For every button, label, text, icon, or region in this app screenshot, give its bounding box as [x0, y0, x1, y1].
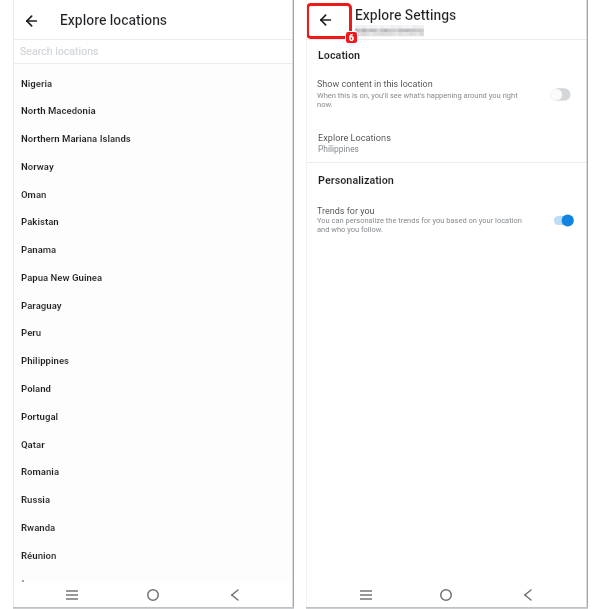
staticText: Portugal: [21, 411, 59, 422]
staticText: Romania: [21, 466, 60, 477]
staticText: Réunion: [21, 550, 57, 561]
staticText: Explore Settings: [355, 7, 457, 23]
staticText: Northern Mariana Islands: [21, 133, 131, 144]
button[interactable]: Recent apps: [355, 584, 377, 606]
button[interactable]: Romania: [13, 457, 294, 485]
button[interactable]: Réunion: [13, 541, 294, 569]
button[interactable]: Oman: [13, 180, 294, 208]
staticText: Pakistan: [21, 216, 59, 227]
staticText: Norway: [21, 161, 54, 172]
button[interactable]: [306, 128, 588, 159]
button[interactable]: Paraguay: [13, 291, 294, 319]
button[interactable]: [306, 200, 588, 238]
staticText: You can personalize the trends for you b…: [317, 216, 522, 234]
button[interactable]: North Macedonia: [13, 96, 294, 124]
button[interactable]: Home: [142, 584, 164, 606]
button[interactable]: Back: [223, 584, 245, 606]
staticText: North Macedonia: [21, 105, 96, 116]
button[interactable]: Rwanda: [13, 513, 294, 541]
staticText: Poland: [21, 383, 52, 394]
staticText: Nigeria: [21, 78, 53, 89]
button[interactable]: [306, 74, 588, 112]
button[interactable]: Poland: [13, 374, 294, 402]
button[interactable]: Back: [516, 584, 538, 606]
staticText: Show content in this location: [317, 79, 433, 90]
staticText: Peru: [21, 327, 42, 338]
staticText: Explore locations: [60, 12, 168, 28]
button[interactable]: Nigeria: [13, 69, 294, 97]
staticText: Search locations: [20, 45, 99, 57]
staticText: Papua New Guinea: [21, 272, 103, 283]
button[interactable]: Philippines: [13, 346, 294, 374]
button[interactable]: [13, 40, 294, 63]
staticText: Location: [318, 49, 361, 62]
staticText: When this is on, you'll see what's happe…: [317, 91, 518, 109]
button[interactable]: Panama: [13, 235, 294, 263]
staticText: Philippines: [318, 144, 359, 154]
button[interactable]: Peru: [13, 318, 294, 346]
button[interactable]: Portugal: [13, 402, 294, 430]
button[interactable]: Back: [306, 3, 352, 39]
staticText: Explore Locations: [318, 132, 391, 143]
button[interactable]: Northern Mariana Islands: [13, 124, 294, 152]
staticText: Rwanda: [21, 522, 56, 533]
staticText: Qatar: [21, 439, 45, 450]
button[interactable]: Papua New Guinea: [13, 263, 294, 291]
button[interactable]: Home: [435, 584, 457, 606]
button[interactable]: Norway: [13, 152, 294, 180]
staticText: Oman: [21, 189, 47, 200]
staticText: 6: [349, 33, 354, 43]
staticText: Russia: [21, 494, 51, 505]
staticText: Panama: [21, 244, 57, 255]
button[interactable]: Back: [21, 10, 42, 31]
button[interactable]: Russia: [13, 485, 294, 513]
button[interactable]: Qatar: [13, 430, 294, 458]
staticText: Personalization: [318, 174, 394, 187]
button[interactable]: Recent apps: [61, 584, 83, 606]
staticText: Paraguay: [21, 300, 62, 311]
button[interactable]: Pakistan: [13, 207, 294, 235]
staticText: Philippines: [21, 355, 70, 366]
staticText: Trends for you: [317, 206, 375, 217]
